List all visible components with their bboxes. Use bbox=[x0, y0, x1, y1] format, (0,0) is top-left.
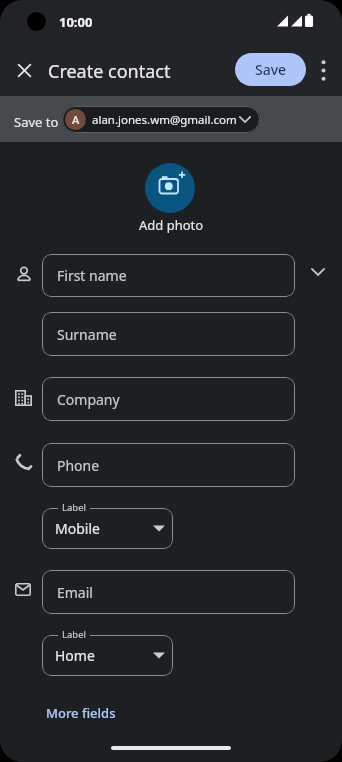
button[interactable]: More fields bbox=[42, 700, 120, 726]
staticText: First name bbox=[57, 266, 127, 285]
button[interactable]: Surname bbox=[42, 312, 295, 356]
staticText: Save bbox=[255, 60, 287, 79]
staticText: 10:00 bbox=[59, 13, 93, 31]
staticText: Add photo bbox=[139, 216, 204, 234]
button[interactable]: Mobile bbox=[42, 508, 173, 549]
button[interactable]: A bbox=[62, 106, 260, 133]
staticText: More fields bbox=[46, 704, 116, 722]
staticText: Create contact bbox=[48, 59, 171, 84]
button[interactable]: Save bbox=[235, 53, 306, 86]
staticText: A bbox=[72, 112, 80, 127]
button[interactable] bbox=[10, 56, 38, 84]
button[interactable]: Home bbox=[42, 635, 173, 676]
staticText: Surname bbox=[57, 325, 117, 344]
staticText: Company bbox=[57, 390, 120, 409]
staticText: Label bbox=[62, 501, 86, 514]
staticText: Email bbox=[57, 583, 93, 602]
button[interactable] bbox=[145, 163, 195, 213]
button[interactable]: Email bbox=[42, 570, 295, 614]
button[interactable] bbox=[312, 56, 334, 84]
button[interactable]: First name bbox=[42, 254, 295, 297]
staticText: Phone bbox=[57, 456, 100, 475]
staticText: Mobile bbox=[55, 519, 100, 538]
staticText: alan.jones.wm@gmail.com bbox=[92, 112, 237, 128]
button[interactable]: Company bbox=[42, 377, 295, 421]
staticText: Label bbox=[62, 628, 86, 641]
button[interactable] bbox=[304, 258, 332, 286]
staticText: Save to bbox=[14, 113, 59, 131]
button[interactable]: Phone bbox=[42, 443, 295, 487]
staticText: Home bbox=[55, 646, 95, 665]
